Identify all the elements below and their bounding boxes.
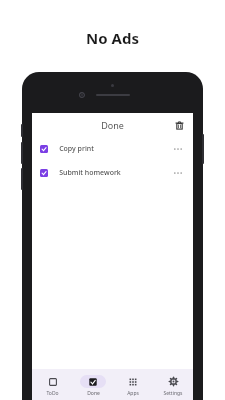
button[interactable]: Apps <box>113 369 153 400</box>
staticText: Copy print <box>59 144 94 154</box>
button[interactable]: ToDo <box>32 369 73 400</box>
staticText: Settings <box>163 390 183 397</box>
button[interactable]: More options for Copy print <box>171 142 185 156</box>
button[interactable]: Done <box>73 369 113 400</box>
button[interactable]: More options for Submit homework <box>171 166 185 180</box>
button[interactable]: Checked <box>32 161 193 185</box>
button[interactable]: Checked <box>32 137 193 161</box>
button[interactable]: Settings <box>153 369 193 400</box>
staticText: Submit homework <box>59 168 121 178</box>
staticText: No Ads <box>86 28 139 48</box>
button[interactable]: Checked <box>40 169 48 177</box>
button[interactable]: Checked <box>40 145 48 153</box>
staticText: Done <box>87 390 100 397</box>
staticText: Done <box>101 119 124 131</box>
staticText: Apps <box>127 390 139 397</box>
button[interactable]: Delete all <box>171 117 187 133</box>
staticText: ToDo <box>46 390 59 397</box>
